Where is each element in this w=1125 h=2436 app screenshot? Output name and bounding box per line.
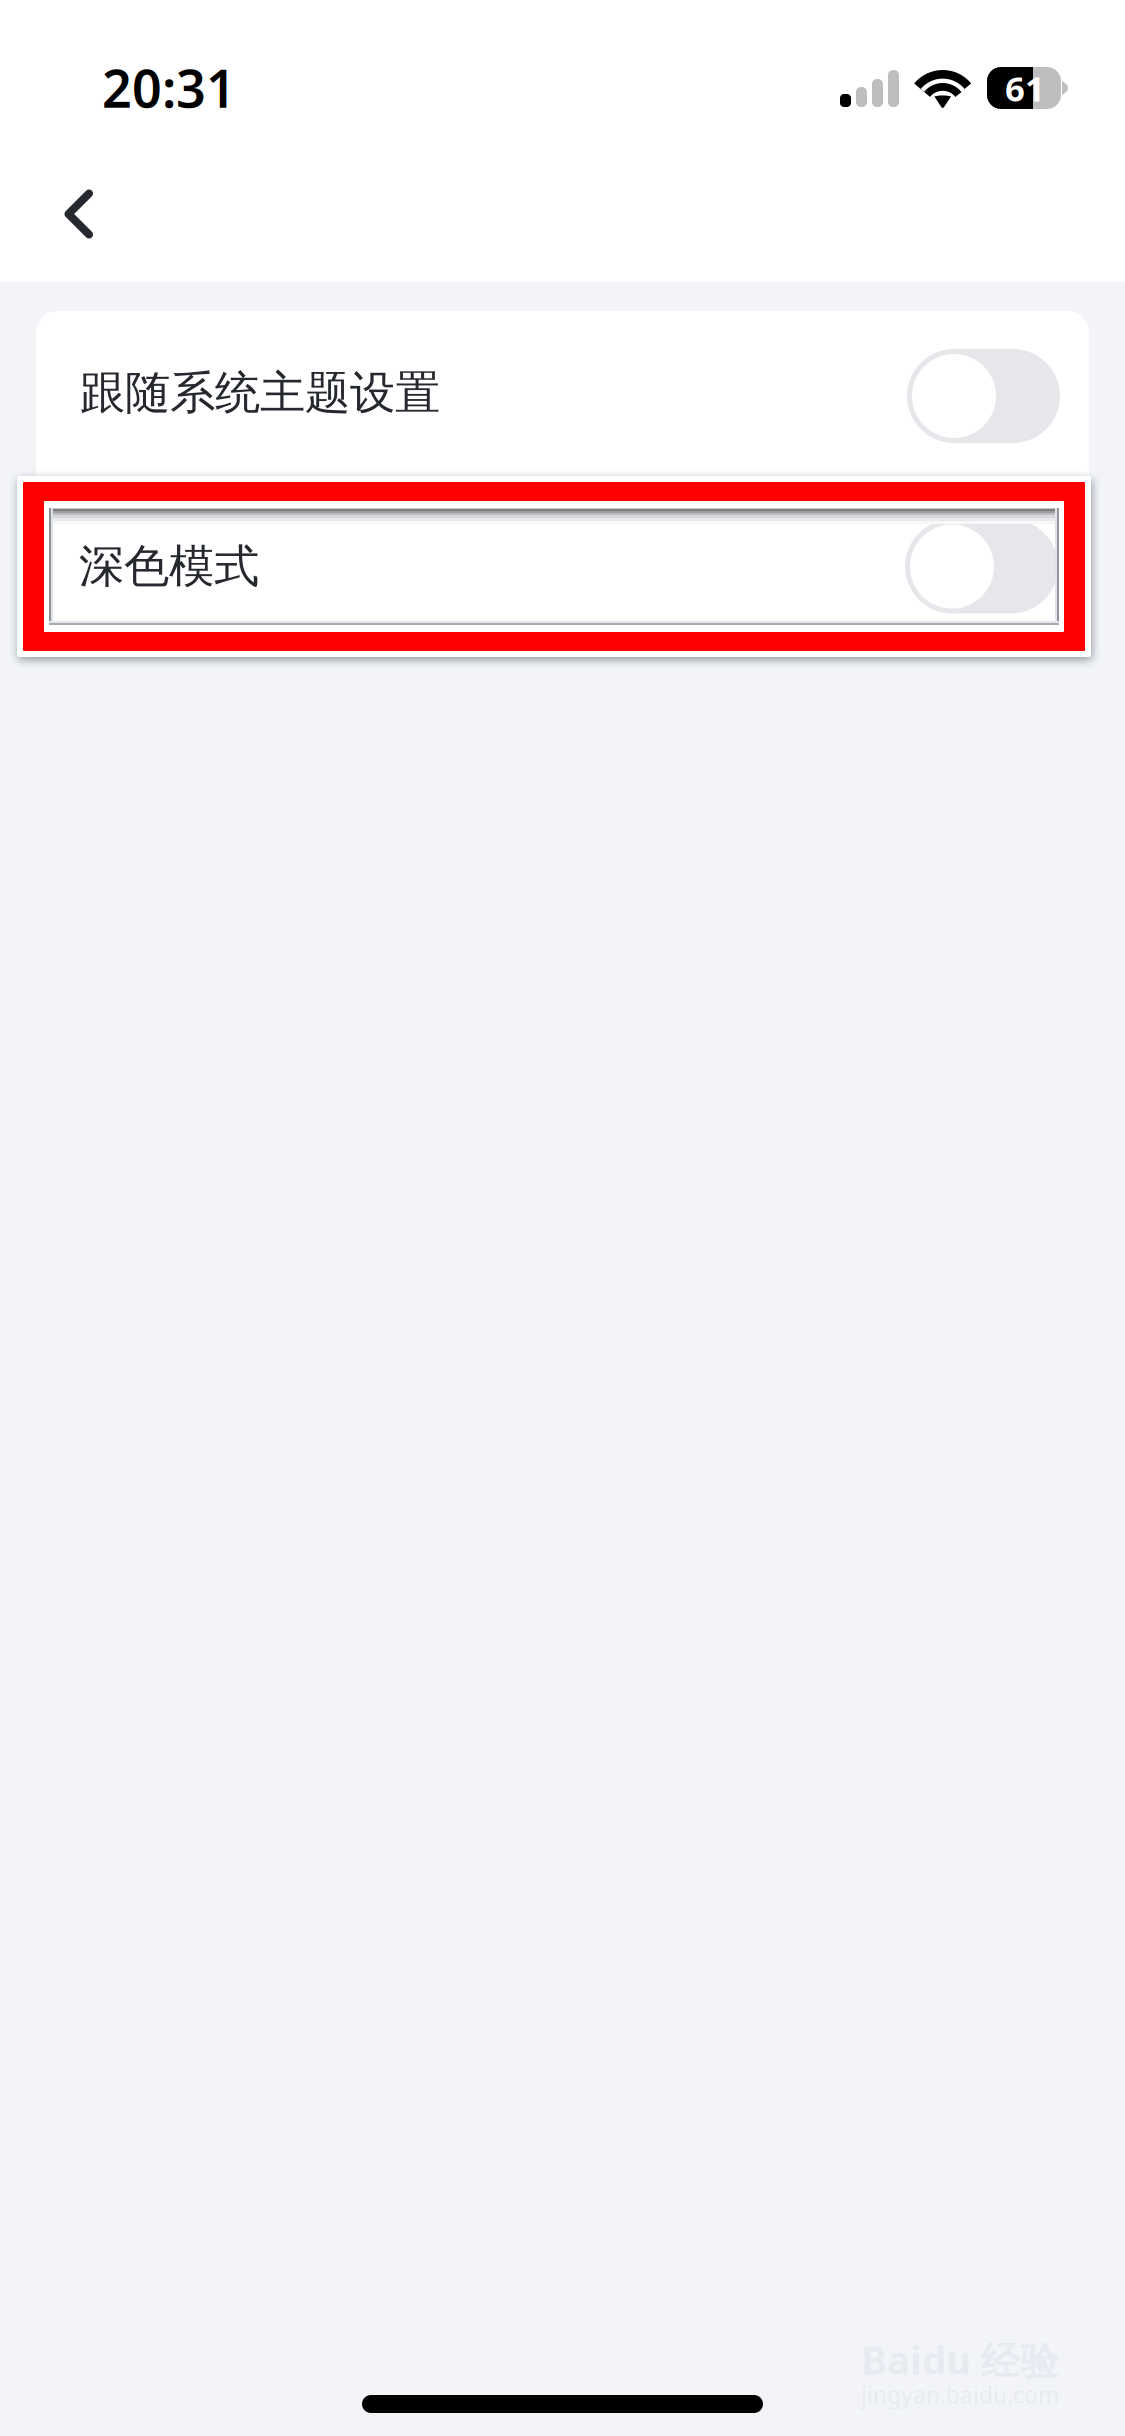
staticText: Baidu 经验: [861, 2334, 1059, 2385]
button[interactable]: Back: [19, 159, 139, 269]
staticText: 20:31: [102, 53, 236, 122]
staticText: 跟随系统主题设置: [80, 365, 440, 421]
staticText: jingyan.baidu.com: [861, 2379, 1059, 2410]
button[interactable]: 跟随系统主题设置: [36, 311, 1089, 515]
staticText: 61: [1005, 65, 1045, 111]
button[interactable]: 深色模式: [49, 508, 1059, 625]
staticText: 深色模式: [79, 539, 259, 594]
